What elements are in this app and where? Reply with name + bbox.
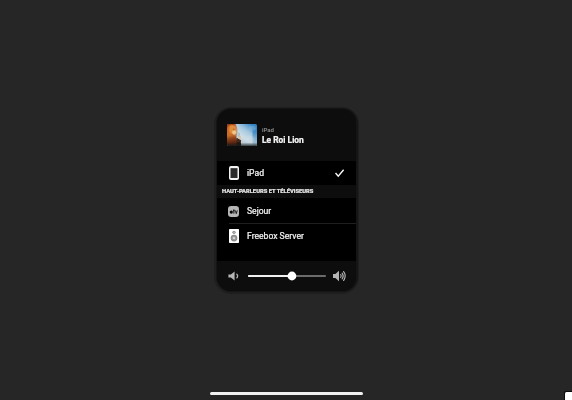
staticText: HAUT-PARLEURS ET TÉLÉVISEURS: [222, 188, 314, 195]
staticText: iPad: [262, 126, 274, 133]
button[interactable]: iPad: [217, 109, 356, 161]
button[interactable]: Increase volume: [333, 270, 345, 282]
button[interactable]: Volume slider: [249, 269, 325, 283]
staticText: iPad: [247, 168, 264, 178]
staticText: Freebox Server: [247, 231, 304, 241]
staticText: Sejour: [247, 206, 272, 216]
button[interactable]: Sejour: [217, 198, 356, 223]
button[interactable]: Freebox Server: [217, 224, 356, 247]
staticText: Le Roi Lion: [262, 135, 304, 145]
button[interactable]: iPad: [217, 161, 356, 185]
button[interactable]: Decrease volume: [228, 271, 238, 281]
